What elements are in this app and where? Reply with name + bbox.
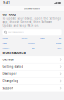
button[interactable]: Getting started [0, 63, 64, 70]
staticText: Getting started [2, 65, 23, 68]
button[interactable]: Recent [22, 37, 27, 40]
staticText: API tools [2, 43, 7, 44]
button[interactable]: Docs [58, 47, 62, 50]
staticText: Files [59, 38, 62, 39]
staticText: Guides [40, 38, 45, 39]
staticText: 9:41 [3, 1, 10, 5]
staticText: Sandbox [28, 43, 35, 44]
button[interactable]: Developer [0, 70, 64, 77]
staticText: Beta [31, 47, 34, 49]
staticText: Overview [2, 58, 13, 61]
button[interactable]: Support [2, 47, 8, 50]
button[interactable]: API tools [2, 42, 7, 45]
staticText: Reviews [56, 43, 62, 44]
staticText: Changelog [2, 79, 18, 83]
staticText: Docs [58, 47, 62, 49]
button[interactable]: Support [0, 85, 64, 92]
staticText: To update your device, open the Settings… [2, 17, 60, 27]
staticText: Use Software Update [24, 8, 40, 10]
staticText: Search tools and docs [8, 31, 24, 33]
staticText: Recent [22, 38, 27, 39]
button[interactable]: Popular [2, 37, 8, 40]
button[interactable]: Sandbox [28, 42, 35, 45]
staticText: MORE RESOURCES [2, 51, 25, 55]
button[interactable]: Guides [40, 37, 45, 40]
staticText: Support [2, 86, 13, 90]
button[interactable]: Files [59, 37, 62, 40]
staticText: Popular [2, 38, 8, 39]
button[interactable]: Overview [0, 56, 64, 63]
button[interactable]: Beta [31, 47, 34, 50]
staticText: Developer [2, 72, 16, 76]
staticText: GET TOOLS [2, 13, 15, 16]
button[interactable]: Reviews [56, 42, 62, 45]
staticText: Support [2, 47, 8, 49]
button[interactable]: Changelog [0, 77, 64, 84]
